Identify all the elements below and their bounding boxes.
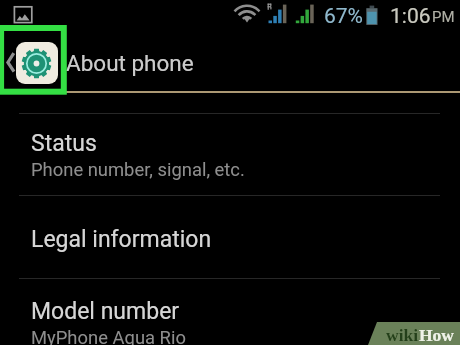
staticText: Model number [31, 298, 180, 325]
staticText: How [419, 325, 454, 344]
button[interactable]: Model number [0, 278, 460, 345]
staticText: PM [432, 8, 455, 26]
staticText: Phone number, signal, etc. [31, 159, 245, 181]
staticText: About phone [66, 50, 194, 76]
staticText: 1:06 [390, 4, 431, 29]
staticText: Status [31, 130, 97, 157]
staticText: MyPhone Aqua Rio [31, 327, 186, 345]
button[interactable]: Settings [16, 42, 58, 84]
button[interactable]: Status [0, 113, 460, 196]
staticText: wiki [386, 325, 419, 344]
button[interactable]: Navigate up [0, 26, 64, 91]
staticText: 67% [324, 4, 363, 29]
button[interactable]: Legal information [0, 195, 460, 278]
staticText: Legal information [31, 226, 212, 253]
